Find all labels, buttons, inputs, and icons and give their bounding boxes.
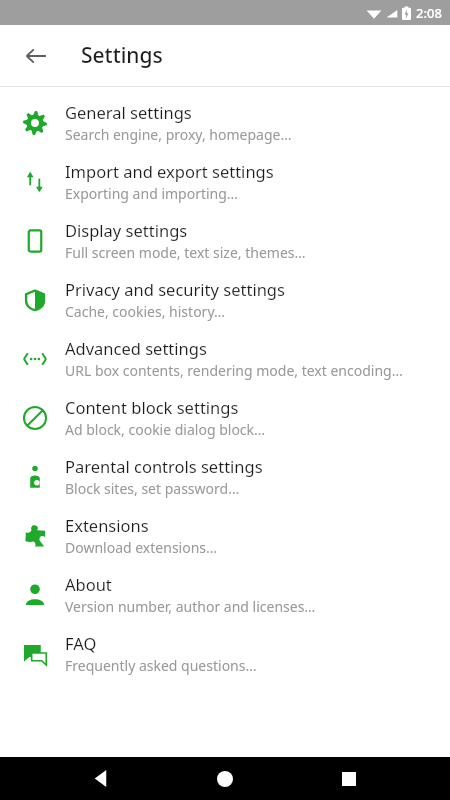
staticText: Cache, cookies, history… bbox=[65, 302, 226, 321]
staticText: Exporting and importing… bbox=[65, 184, 238, 203]
staticText: General settings bbox=[65, 101, 192, 123]
button[interactable]: Extensions bbox=[0, 506, 450, 565]
staticText: Extensions bbox=[65, 514, 149, 536]
button[interactable]: Recents bbox=[326, 757, 372, 800]
staticText: Download extensions… bbox=[65, 538, 218, 557]
staticText: Block sites, set password… bbox=[65, 479, 240, 498]
staticText: FAQ bbox=[65, 632, 97, 654]
staticText: Settings bbox=[81, 41, 163, 70]
staticText: Version number, author and licenses… bbox=[65, 597, 316, 616]
staticText: Content block settings bbox=[65, 396, 239, 418]
button[interactable]: Content block settings bbox=[0, 388, 450, 447]
button[interactable]: Privacy and security settings bbox=[0, 270, 450, 329]
staticText: Display settings bbox=[65, 219, 188, 241]
button[interactable]: Back bbox=[14, 34, 58, 78]
button[interactable]: General settings bbox=[0, 93, 450, 152]
button[interactable]: Back bbox=[78, 757, 124, 800]
button[interactable]: FAQ bbox=[0, 624, 450, 683]
staticText: 2:08 bbox=[416, 4, 442, 22]
staticText: Frequently asked questions… bbox=[65, 656, 257, 675]
staticText: Parental controls settings bbox=[65, 455, 263, 477]
staticText: Advanced settings bbox=[65, 337, 207, 359]
staticText: Import and export settings bbox=[65, 160, 274, 182]
button[interactable]: Advanced settings bbox=[0, 329, 450, 388]
staticText: URL box contents, rendering mode, text e… bbox=[65, 361, 403, 380]
button[interactable]: Import and export settings bbox=[0, 152, 450, 211]
button[interactable]: Parental controls settings bbox=[0, 447, 450, 506]
staticText: Privacy and security settings bbox=[65, 278, 285, 300]
button[interactable]: Display settings bbox=[0, 211, 450, 270]
button[interactable]: Home bbox=[202, 757, 248, 800]
staticText: Full screen mode, text size, themes… bbox=[65, 243, 306, 262]
staticText: About bbox=[65, 573, 112, 595]
staticText: Ad block, cookie dialog block… bbox=[65, 420, 266, 439]
staticText: Search engine, proxy, homepage… bbox=[65, 125, 292, 144]
button[interactable]: About bbox=[0, 565, 450, 624]
